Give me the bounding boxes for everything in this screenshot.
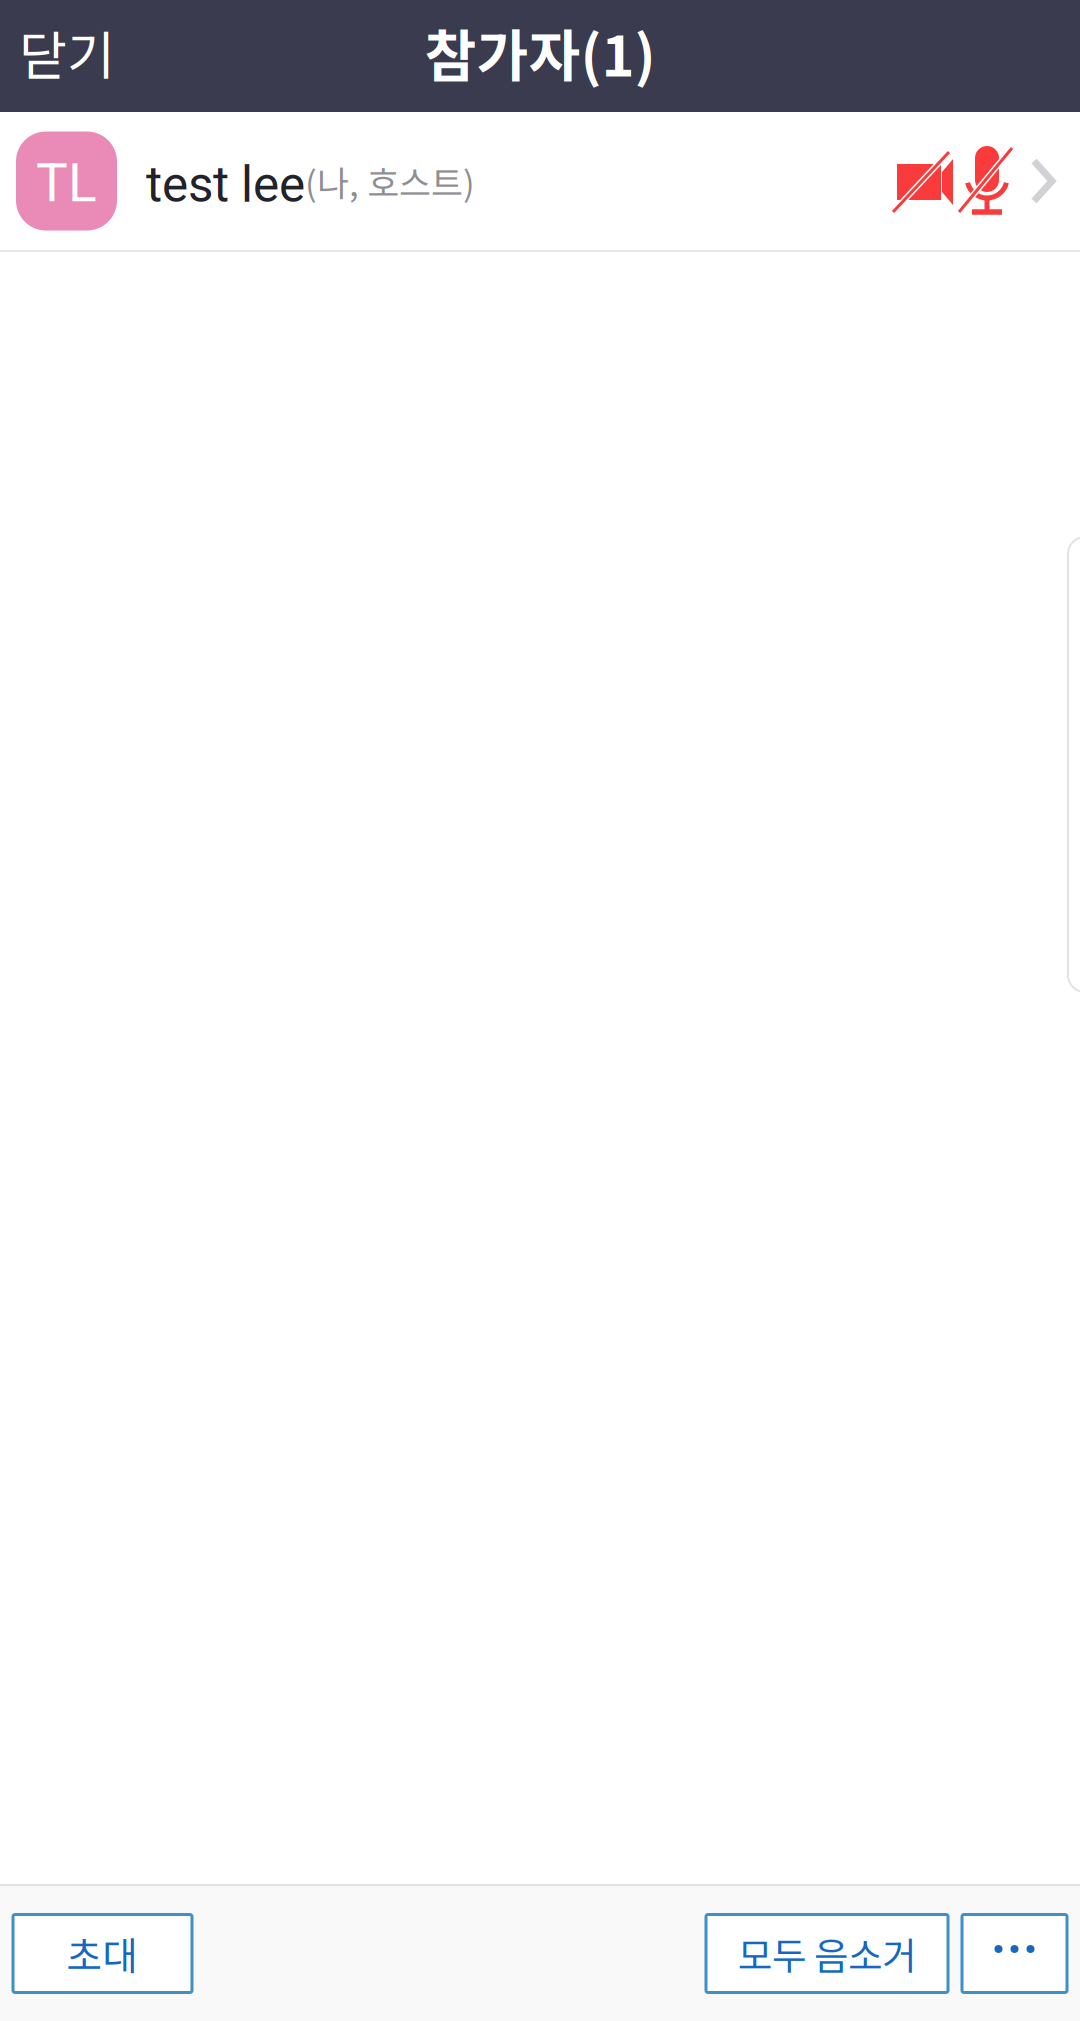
button[interactable]: More options — [962, 1914, 1067, 1992]
staticText: 닫기 — [19, 14, 115, 90]
button[interactable]: 모두 음소거 — [706, 1914, 948, 1992]
staticText: 모두 음소거 — [738, 1926, 916, 1981]
staticText: TL — [36, 152, 97, 214]
staticText: test lee — [146, 156, 305, 214]
button[interactable]: TL — [0, 112, 1080, 252]
staticText: 초대 — [66, 1925, 138, 1981]
button[interactable]: 닫기 — [0, 0, 134, 112]
button[interactable]: 초대 — [13, 1914, 192, 1992]
staticText: (나, 호스트) — [305, 156, 475, 206]
staticText: 참가자(1) — [424, 11, 655, 93]
